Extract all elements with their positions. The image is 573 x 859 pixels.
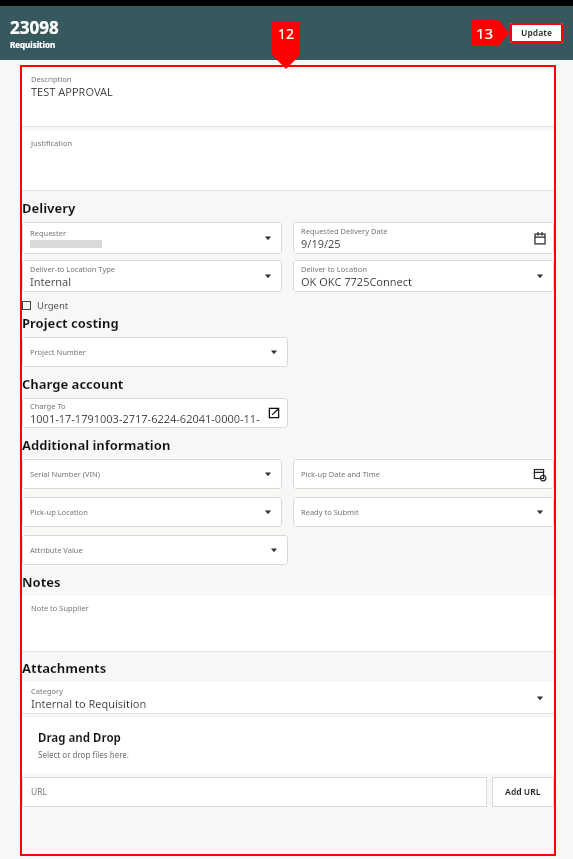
- staticText: Delivery: [22, 199, 76, 217]
- staticText: Add URL: [505, 786, 541, 798]
- staticText: URL: [31, 786, 47, 798]
- staticText: Select or drop files here.: [38, 749, 129, 760]
- button[interactable]: Deliver to Location: [293, 260, 554, 292]
- button[interactable]: Justification: [22, 131, 554, 191]
- staticText: Internal: [30, 274, 72, 289]
- staticText: Category: [31, 686, 63, 696]
- staticText: Deliver-to Location Type: [30, 264, 116, 274]
- staticText: Project Number: [30, 347, 86, 357]
- button[interactable]: Project Number: [22, 337, 288, 367]
- staticText: 1001-17-1791003-2717-6224-62041-0000-11-…: [30, 411, 262, 426]
- button[interactable]: Requester: [22, 222, 282, 254]
- staticText: Pick-up Location: [30, 507, 88, 517]
- staticText: Requisition: [10, 39, 56, 50]
- staticText: Pick-up Date and Time: [301, 469, 381, 479]
- staticText: Note to Supplier: [31, 603, 89, 613]
- staticText: OK OKC 7725Connect: [301, 274, 413, 289]
- staticText: 13: [476, 23, 494, 43]
- staticText: Attribute Value: [30, 545, 83, 555]
- staticText: 12: [278, 24, 295, 43]
- button[interactable]: Description: [22, 67, 554, 127]
- staticText: Notes: [22, 573, 61, 591]
- button[interactable]: Update: [510, 23, 563, 43]
- staticText: Urgent: [37, 299, 69, 312]
- button[interactable]: Pick-up Date and Time: [293, 459, 554, 489]
- staticText: 23098: [10, 16, 59, 39]
- staticText: Additional information: [22, 436, 171, 454]
- staticText: Ready to Submit: [301, 507, 359, 517]
- staticText: Justification: [31, 138, 73, 148]
- staticText: Update: [521, 27, 553, 39]
- staticText: Description: [31, 74, 72, 84]
- staticText: Serial Number (VIN): [30, 469, 100, 479]
- staticText: Requested Delivery Date: [301, 226, 388, 236]
- staticText: Internal to Requisition: [31, 696, 147, 711]
- staticText: Deliver to Location: [301, 264, 367, 274]
- other: Annotation 12: [272, 22, 300, 69]
- button[interactable]: Note to Supplier: [22, 596, 554, 652]
- staticText: Drag and Drop: [38, 730, 121, 746]
- button[interactable]: Serial Number (VIN): [22, 459, 282, 489]
- button[interactable]: Add URL: [492, 777, 554, 807]
- button[interactable]: URL: [22, 777, 487, 807]
- button[interactable]: Ready to Submit: [293, 497, 554, 527]
- button[interactable]: Category: [22, 682, 554, 714]
- button[interactable]: Urgent: [22, 299, 69, 312]
- staticText: Charge To: [30, 401, 66, 411]
- button[interactable]: Requested Delivery Date: [293, 222, 554, 254]
- staticText: 9/19/25: [301, 236, 341, 251]
- staticText: Attachments: [22, 659, 107, 677]
- button[interactable]: Pick-up Location: [22, 497, 282, 527]
- button[interactable]: Attribute Value: [22, 535, 288, 565]
- staticText: Requester: [30, 228, 66, 238]
- button[interactable]: Charge To: [22, 398, 288, 428]
- button[interactable]: Drag and Drop: [22, 717, 554, 773]
- staticText: TEST APPROVAL: [31, 84, 113, 99]
- staticText: Charge account: [22, 375, 124, 393]
- button[interactable]: Deliver-to Location Type: [22, 260, 282, 292]
- staticText: Project costing: [22, 314, 119, 332]
